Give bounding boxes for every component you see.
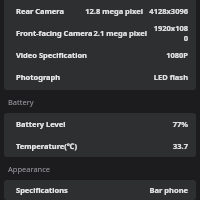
staticText: LED flash (153, 72, 188, 82)
button[interactable]: Rear Camera (4, 0, 196, 22)
staticText: Battery (8, 97, 34, 107)
button[interactable]: Photograph (4, 66, 196, 88)
button[interactable]: Specifications (4, 180, 196, 200)
staticText: 2.1 mega pixel (93, 28, 147, 38)
staticText: Front-facing Camera (16, 28, 93, 38)
staticText: Video Specification (16, 50, 87, 60)
button[interactable]: Battery Level (4, 113, 196, 135)
staticText: Appearance (8, 164, 51, 174)
staticText: 1080P (166, 50, 188, 60)
staticText: Temperature(℃) (16, 141, 77, 151)
staticText: Bar phone (149, 185, 188, 195)
button[interactable]: Video Specification (4, 44, 196, 66)
staticText: Photograph (16, 72, 61, 82)
staticText: Rear Camera (16, 6, 64, 16)
staticText: Battery Level (16, 119, 66, 129)
staticText: Specifications (16, 185, 68, 195)
staticText: 1920x1080 (153, 23, 188, 43)
button[interactable]: Front-facing Camera (4, 22, 196, 44)
staticText: 4128x3096 (149, 6, 188, 16)
staticText: 77% (172, 119, 188, 129)
button[interactable]: Temperature(℃) (4, 135, 196, 157)
staticText: 12.8 mega pixel (85, 6, 143, 16)
staticText: 33.7 (173, 141, 188, 151)
